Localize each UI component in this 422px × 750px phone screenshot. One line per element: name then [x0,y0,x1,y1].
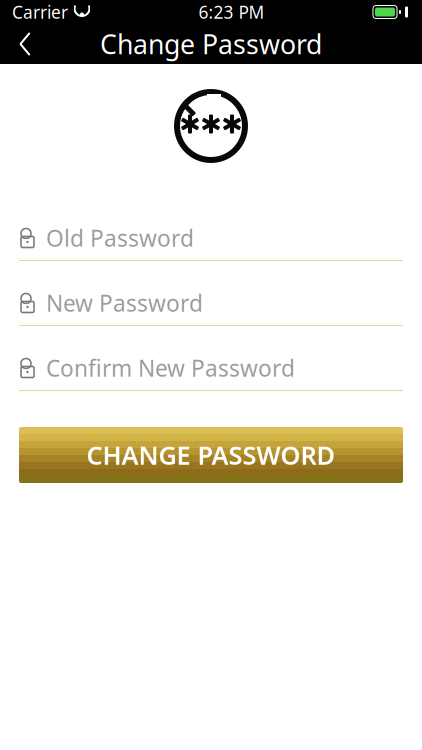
button[interactable]: Old Password [19,196,403,261]
staticText: CHANGE PASSWORD [86,438,335,472]
staticText: Confirm New Password [46,353,295,383]
staticText: 6:23 PM [198,0,264,23]
button[interactable]: CHANGE PASSWORD [19,427,403,483]
button[interactable]: Back [0,24,50,64]
button[interactable]: Confirm New Password [19,326,403,391]
staticText: Change Password [100,26,322,62]
button[interactable]: New Password [19,261,403,326]
staticText: New Password [46,288,203,318]
staticText: Carrier [12,0,68,23]
staticText: Old Password [46,223,194,253]
